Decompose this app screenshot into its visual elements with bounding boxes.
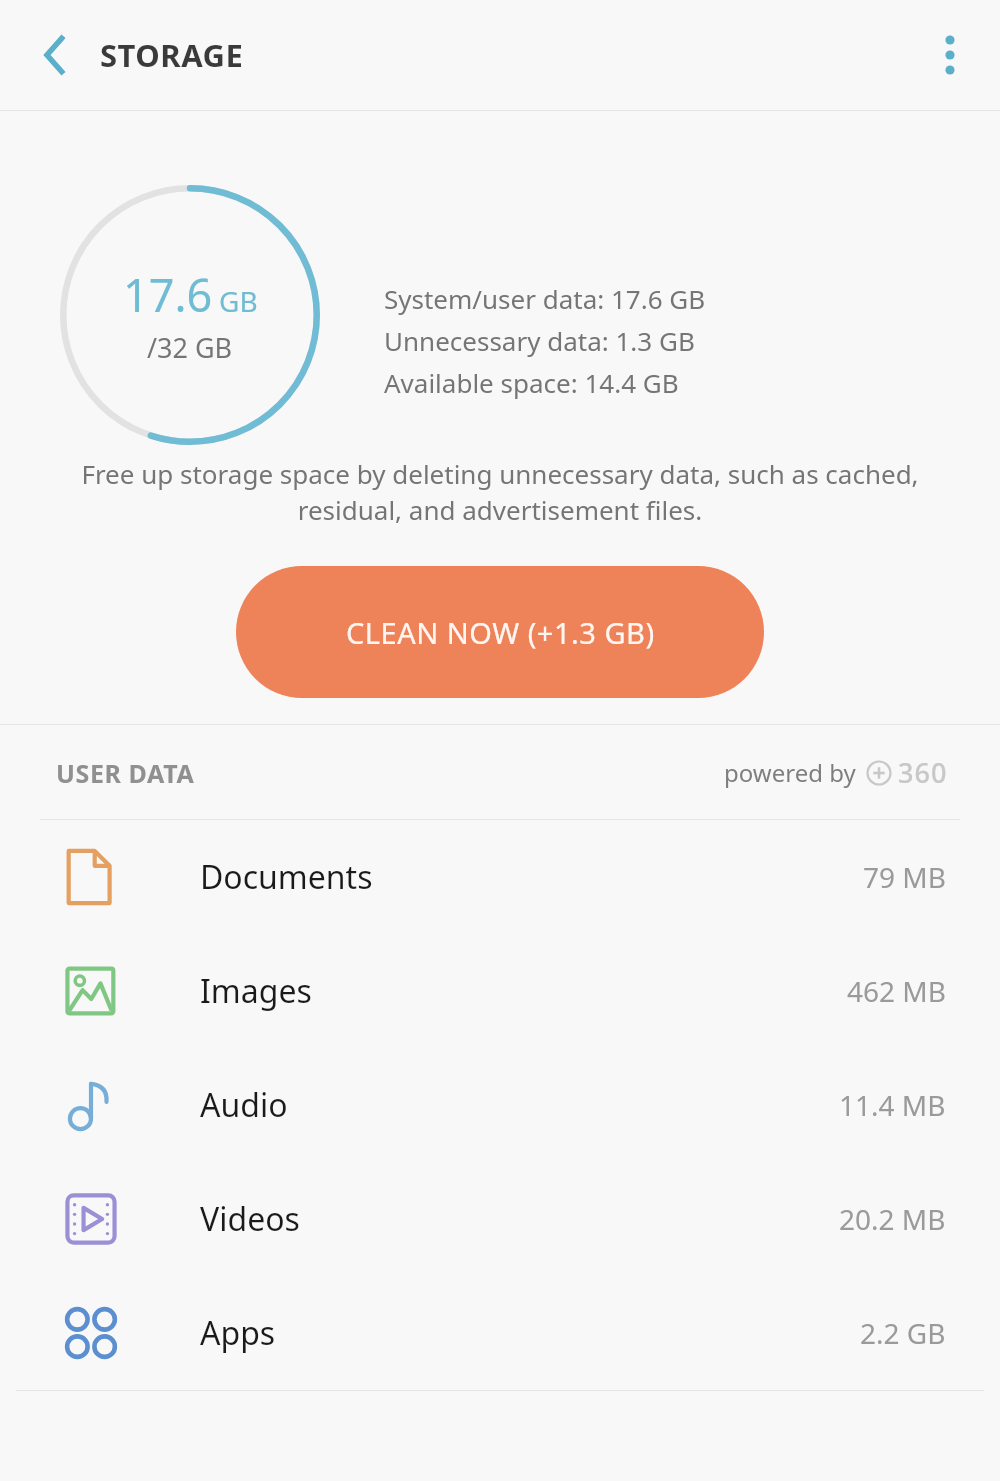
button[interactable]: Images bbox=[0, 934, 1000, 1048]
staticText: Videos bbox=[200, 1197, 300, 1241]
staticText: Apps bbox=[200, 1311, 276, 1355]
staticText: 11.4 MB bbox=[839, 1086, 946, 1124]
staticText: Documents bbox=[200, 855, 373, 899]
staticText: Free up storage space by deleting unnece… bbox=[34, 456, 966, 528]
button[interactable]: More options bbox=[918, 23, 982, 87]
staticText: System/user data: 17.6 GB bbox=[384, 281, 706, 316]
button[interactable]: CLEAN NOW (+1.3 GB) bbox=[236, 566, 764, 698]
button[interactable]: Back bbox=[22, 23, 86, 87]
staticText: 462 MB bbox=[847, 972, 946, 1010]
staticText: 79 MB bbox=[863, 858, 946, 896]
staticText: 17.6 bbox=[123, 264, 213, 325]
button[interactable]: Audio bbox=[0, 1048, 1000, 1162]
staticText: USER DATA bbox=[56, 756, 195, 790]
staticText: /32 GB bbox=[147, 329, 233, 366]
staticText: Available space: 14.4 GB bbox=[384, 365, 679, 400]
staticText: Unnecessary data: 1.3 GB bbox=[384, 323, 695, 358]
button[interactable]: Apps bbox=[0, 1276, 1000, 1390]
staticText: 2.2 GB bbox=[860, 1314, 946, 1352]
staticText: STORAGE bbox=[100, 34, 244, 76]
staticText: powered by bbox=[724, 756, 856, 789]
button[interactable]: Videos bbox=[0, 1162, 1000, 1276]
staticText: Audio bbox=[200, 1083, 288, 1127]
staticText: Images bbox=[200, 969, 312, 1013]
staticText: CLEAN NOW (+1.3 GB) bbox=[346, 613, 655, 652]
staticText: 20.2 MB bbox=[839, 1200, 946, 1238]
button[interactable]: Documents bbox=[0, 820, 1000, 934]
staticText: GB bbox=[219, 282, 258, 320]
staticText: 360 bbox=[898, 754, 948, 791]
